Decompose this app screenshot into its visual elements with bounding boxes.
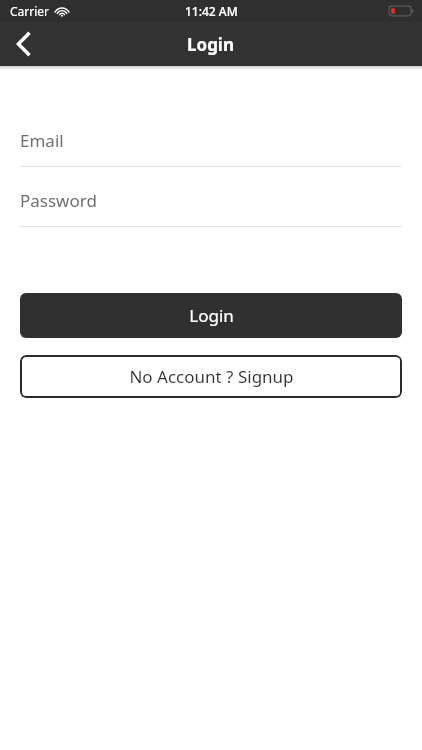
button[interactable]: No Account ? Signup (20, 355, 402, 398)
staticText: Email (20, 129, 64, 152)
staticText: Login (187, 33, 235, 56)
staticText: Login (189, 304, 234, 327)
button[interactable]: Email (20, 129, 402, 167)
staticText: 11:42 AM (185, 3, 238, 19)
staticText: Carrier (10, 3, 50, 19)
button[interactable]: Login (20, 293, 402, 338)
staticText: Password (20, 189, 97, 212)
button[interactable]: Password (20, 189, 402, 227)
button[interactable]: Back (0, 22, 46, 66)
staticText: No Account ? Signup (129, 365, 294, 388)
